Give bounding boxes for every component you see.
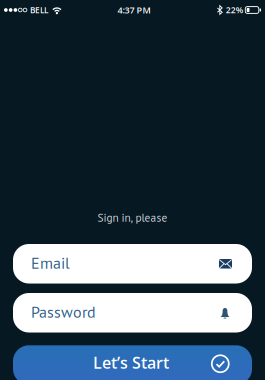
staticText: Email [31, 252, 70, 273]
staticText: Sign in, please [97, 210, 167, 225]
staticText: Password [31, 301, 96, 322]
staticText: 22% [226, 4, 243, 16]
button[interactable]: Password [13, 293, 252, 332]
staticText: 4:37 PM [117, 4, 150, 16]
button[interactable]: Let’s Start [13, 345, 252, 380]
staticText: BELL [30, 4, 48, 16]
button[interactable]: Email [13, 244, 252, 283]
staticText: Let’s Start [93, 352, 169, 373]
